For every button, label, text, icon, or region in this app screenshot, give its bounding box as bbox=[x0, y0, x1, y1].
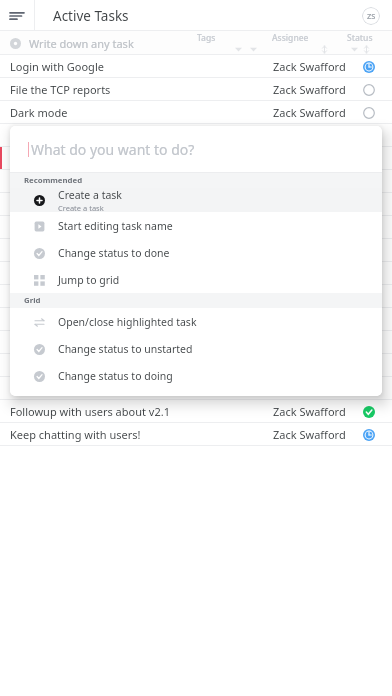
staticText: Keep chatting with users! bbox=[10, 427, 141, 442]
staticText: ZS bbox=[367, 11, 376, 21]
button[interactable]: Keep chatting with users! bbox=[0, 423, 392, 446]
button[interactable]: Followup with users about v2.1 bbox=[0, 400, 392, 423]
button[interactable]: Dark mode bbox=[0, 101, 392, 124]
staticText: Active Tasks bbox=[53, 7, 129, 25]
button[interactable]: Open/close highlighted task bbox=[10, 308, 382, 335]
staticText: Tags bbox=[197, 32, 216, 44]
button[interactable]: Release v2.1 bbox=[0, 377, 392, 400]
staticText: Dark mode bbox=[10, 105, 68, 120]
button[interactable]: Create a task bbox=[10, 188, 382, 212]
staticText: Create a task bbox=[58, 203, 104, 212]
staticText: Change status to unstarted bbox=[58, 342, 193, 356]
button[interactable]: Migrate the server bbox=[0, 285, 392, 308]
staticText: Start editing task name bbox=[58, 219, 173, 233]
button[interactable]: Menu bbox=[0, 0, 34, 31]
button[interactable]: Change status to unstarted bbox=[10, 335, 382, 362]
staticText: Zack Swafford bbox=[273, 59, 346, 74]
staticText: Zack Swafford bbox=[273, 404, 346, 419]
staticText: Email campaign bbox=[10, 151, 93, 166]
button[interactable]: Start editing task name bbox=[10, 212, 382, 239]
staticText: Jump to grid bbox=[58, 273, 120, 287]
staticText: Create a task bbox=[58, 188, 122, 202]
staticText: Release v2.1 bbox=[10, 381, 74, 396]
button[interactable]: Add analytics bbox=[0, 262, 392, 285]
staticText: Fix the login bug bbox=[10, 358, 97, 373]
staticText: Assignee bbox=[272, 32, 309, 44]
button[interactable]: Hire a designer bbox=[0, 170, 392, 193]
staticText: Hire a designer bbox=[10, 174, 89, 189]
button[interactable]: Profile ZS bbox=[362, 7, 380, 25]
staticText: Change status to done bbox=[58, 246, 170, 260]
staticText: Migrate the server bbox=[10, 289, 106, 304]
button[interactable]: Plan the roadmap bbox=[0, 331, 392, 354]
staticText: Zack Swafford bbox=[273, 105, 346, 120]
staticText: What do you want to do? bbox=[31, 140, 195, 159]
staticText: Ship the beta bbox=[10, 243, 79, 258]
button[interactable]: Improve onboarding bbox=[0, 124, 392, 147]
button[interactable]: Audit the landing page bbox=[0, 216, 392, 239]
button[interactable]: Ship the beta bbox=[0, 239, 392, 262]
staticText: Followup with users about v2.1 bbox=[10, 404, 170, 419]
staticText: Zack Swafford bbox=[273, 289, 346, 304]
staticText: Status bbox=[347, 32, 373, 44]
button[interactable]: Email campaign bbox=[0, 147, 392, 170]
button[interactable]: File the TCP reports bbox=[0, 78, 392, 101]
button[interactable]: Jump to grid bbox=[10, 266, 382, 293]
staticText: Write down any task bbox=[29, 36, 134, 51]
staticText: Write release notes bbox=[10, 312, 110, 327]
button[interactable]: Fix the login bug bbox=[0, 354, 392, 377]
button[interactable]: Write release notes bbox=[0, 308, 392, 331]
staticText: Plan the roadmap bbox=[10, 335, 103, 350]
staticText: File the TCP reports bbox=[10, 82, 111, 97]
staticText: Change status to doing bbox=[58, 369, 173, 383]
staticText: Open/close highlighted task bbox=[58, 315, 197, 329]
staticText: Grid bbox=[24, 295, 41, 306]
staticText: Book the venue bbox=[10, 197, 91, 212]
button[interactable]: Change status to doing bbox=[10, 362, 382, 389]
button[interactable]: Add task bbox=[10, 38, 21, 49]
staticText: Zack Swafford bbox=[273, 427, 346, 442]
button[interactable]: Book the venue bbox=[0, 193, 392, 216]
staticText: Zack Swafford bbox=[273, 82, 346, 97]
button[interactable]: Login with Google bbox=[0, 55, 392, 78]
button[interactable]: Change status to done bbox=[10, 239, 382, 266]
staticText: Login with Google bbox=[10, 59, 104, 74]
staticText: Add analytics bbox=[10, 266, 79, 281]
staticText: Audit the landing page bbox=[10, 220, 128, 235]
staticText: Recommended bbox=[24, 175, 83, 186]
